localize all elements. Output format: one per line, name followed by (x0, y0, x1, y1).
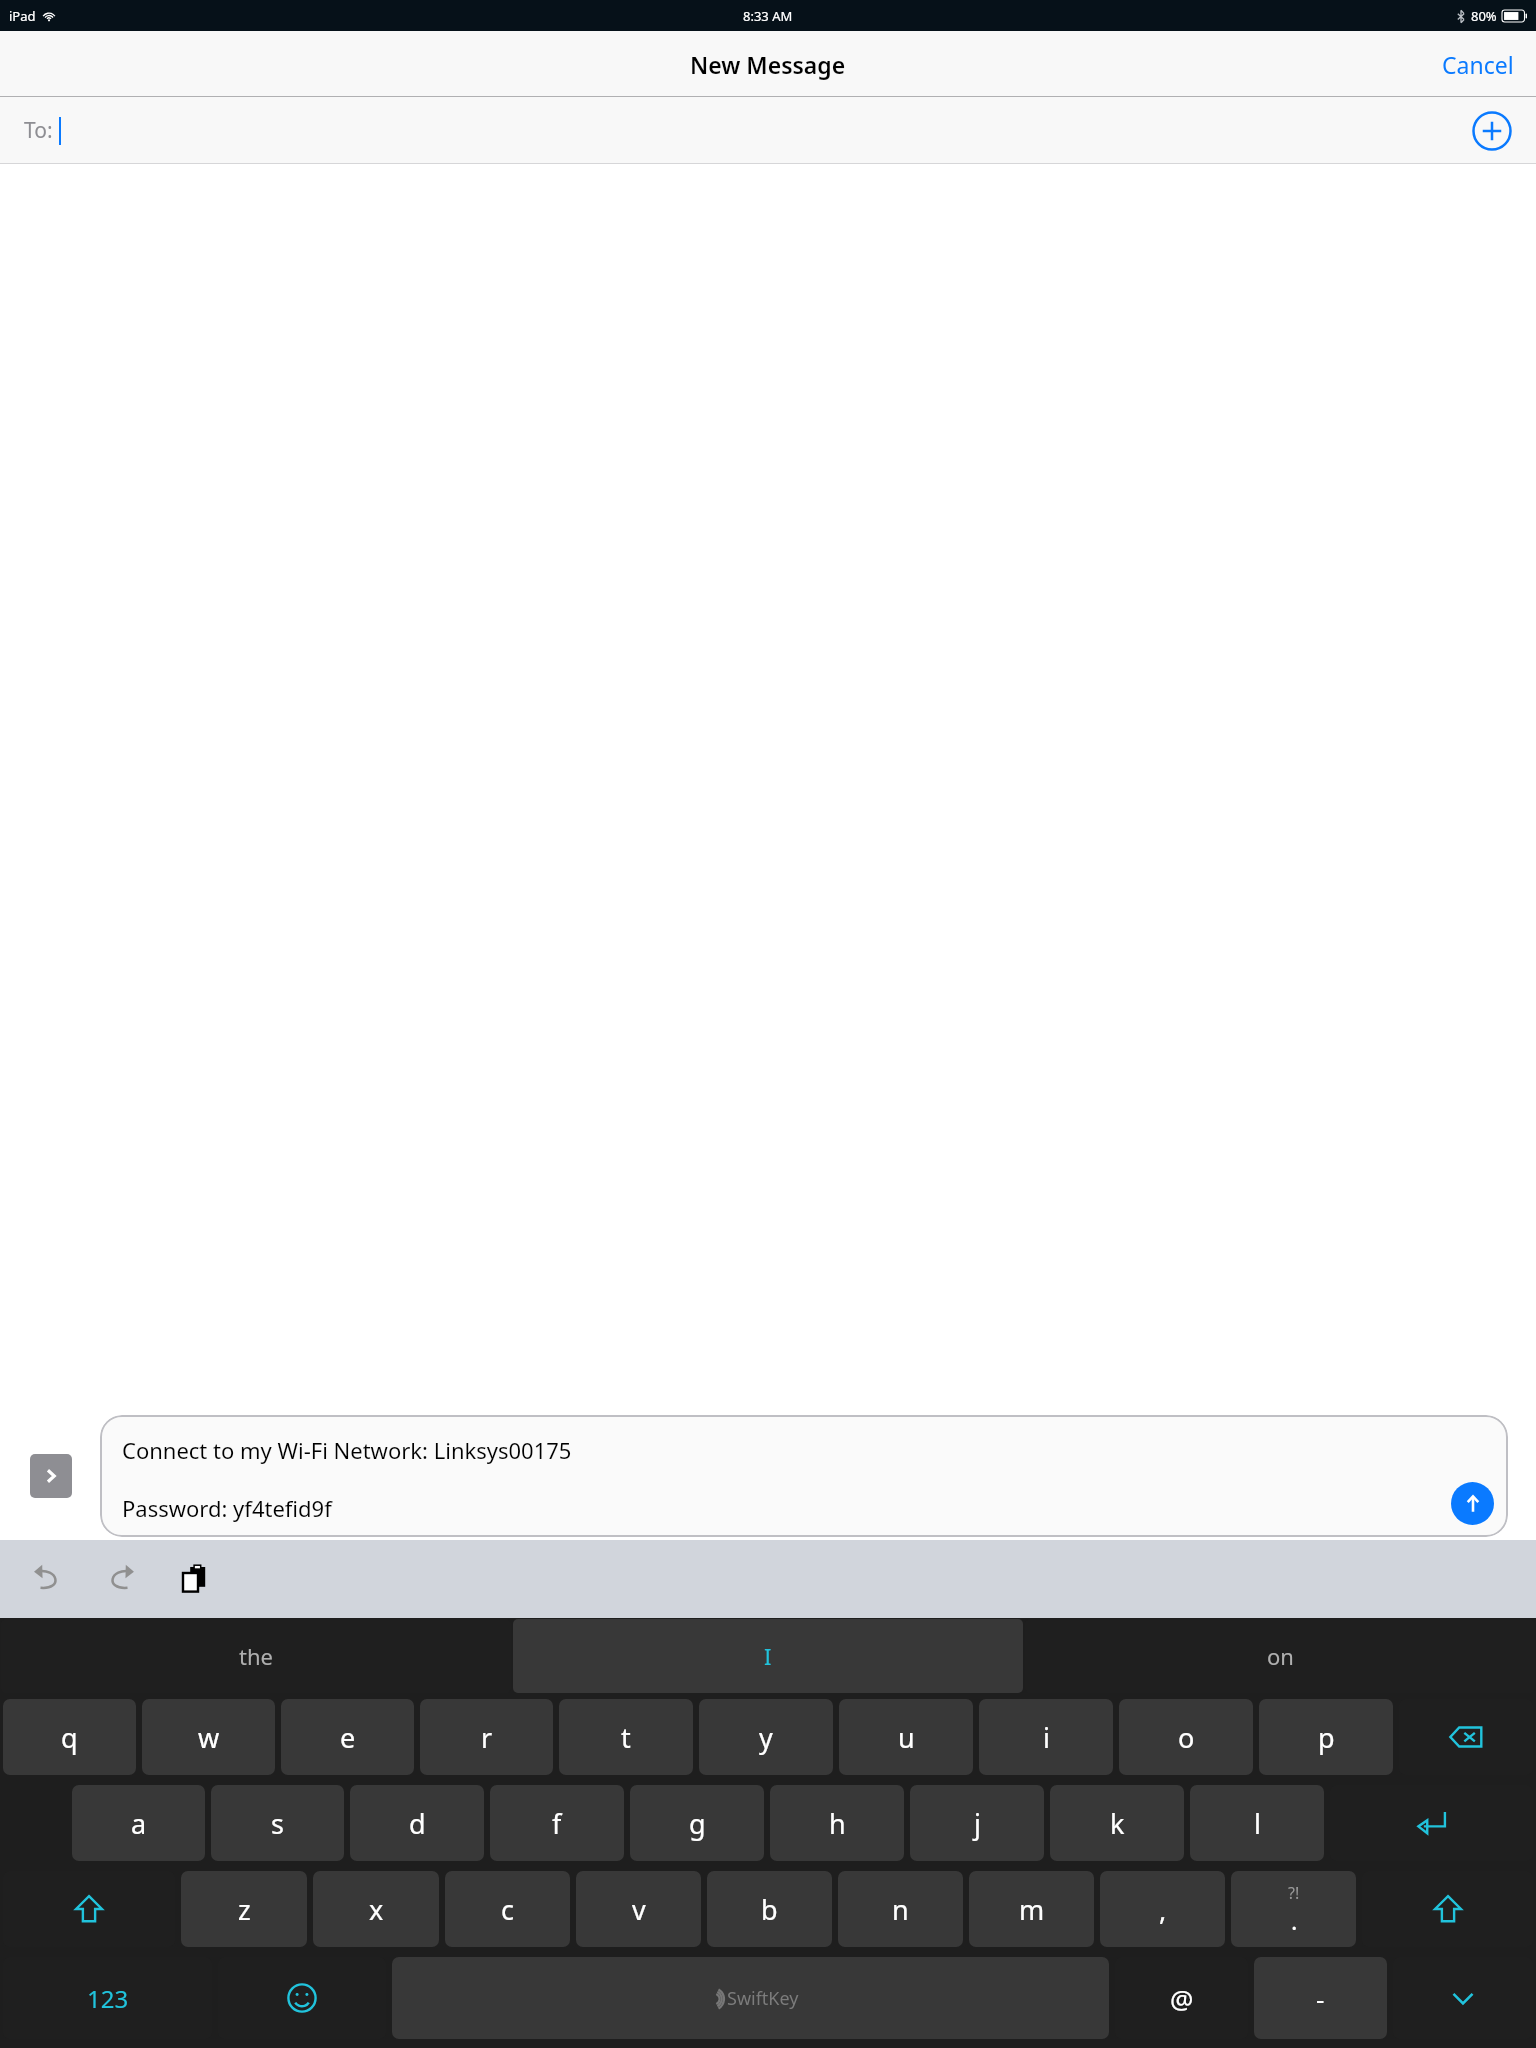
staticText: t (621, 1719, 631, 1756)
staticText: h (829, 1805, 846, 1842)
button[interactable]: Send (1451, 1482, 1494, 1525)
button[interactable]: Shift (1362, 1871, 1533, 1947)
staticText: q (61, 1719, 78, 1756)
button[interactable]: , (1100, 1871, 1225, 1947)
button[interactable]: Add contact (1472, 111, 1512, 151)
staticText: - (1316, 1981, 1325, 2016)
staticText: a (131, 1805, 147, 1842)
staticText: c (501, 1891, 514, 1928)
button[interactable]: n (838, 1871, 963, 1947)
button[interactable]: ?! (1231, 1871, 1356, 1947)
button[interactable]: Shift (3, 1871, 175, 1947)
staticText: I (764, 1641, 772, 1671)
button[interactable]: 123 (3, 1957, 212, 2039)
button[interactable]: o (1119, 1699, 1253, 1775)
staticText: @ (1170, 1981, 1194, 2016)
button[interactable]: l (1190, 1785, 1324, 1861)
button[interactable]: the (1, 1619, 511, 1693)
button[interactable]: v (576, 1871, 701, 1947)
staticText: Connect to my Wi-Fi Network: Linksys0017… (122, 1435, 572, 1465)
staticText: j (974, 1805, 981, 1842)
staticText: z (238, 1891, 251, 1928)
button[interactable]: Clipboard (166, 1550, 224, 1608)
staticText: . (1291, 1904, 1298, 1937)
staticText: 80% (1471, 7, 1497, 25)
button[interactable]: @ (1115, 1957, 1248, 2039)
staticText: Password: yf4tefid9f (122, 1493, 332, 1523)
button[interactable]: f (490, 1785, 624, 1861)
staticText: b (761, 1891, 778, 1928)
staticText: n (892, 1891, 909, 1928)
button[interactable]: t (559, 1699, 693, 1775)
staticText: iPad (9, 7, 36, 25)
button[interactable]: h (770, 1785, 904, 1861)
button[interactable]: q (3, 1699, 136, 1775)
button[interactable]: g (630, 1785, 764, 1861)
button[interactable]: c (445, 1871, 570, 1947)
button[interactable]: m (969, 1871, 1094, 1947)
staticText: i (1043, 1719, 1050, 1756)
staticText: on (1267, 1641, 1294, 1671)
button[interactable]: I (513, 1619, 1023, 1693)
staticText: r (481, 1719, 493, 1756)
button[interactable]: y (699, 1699, 833, 1775)
button[interactable]: Undo (20, 1550, 78, 1608)
button[interactable]: a (72, 1785, 205, 1861)
staticText: Cancel (1442, 49, 1514, 80)
button[interactable]: u (839, 1699, 973, 1775)
button[interactable]: x (313, 1871, 439, 1947)
button[interactable]: Expand apps (30, 1454, 72, 1498)
staticText: s (271, 1805, 284, 1842)
button[interactable]: Hide keyboard (1393, 1957, 1533, 2039)
staticText: p (1318, 1719, 1335, 1756)
button[interactable]: e (281, 1699, 414, 1775)
staticText: u (898, 1719, 915, 1756)
button[interactable]: SwiftKey (392, 1957, 1109, 2039)
button[interactable]: k (1050, 1785, 1184, 1861)
staticText: , (1159, 1891, 1167, 1928)
button[interactable]: d (350, 1785, 484, 1861)
staticText: To: (24, 116, 53, 145)
staticText: m (1019, 1891, 1045, 1928)
button[interactable]: Connect to my Wi-Fi Network: Linksys0017… (100, 1415, 1508, 1537)
staticText: y (759, 1719, 773, 1756)
button[interactable]: s (211, 1785, 344, 1861)
staticText: x (369, 1891, 384, 1928)
staticText: e (340, 1719, 356, 1756)
staticText: g (689, 1805, 706, 1842)
button[interactable]: on (1025, 1619, 1535, 1693)
button[interactable]: Emoji (218, 1957, 386, 2039)
staticText: f (552, 1805, 562, 1842)
button[interactable]: i (979, 1699, 1113, 1775)
staticText: 8:33 AM (743, 7, 793, 25)
staticText: o (1178, 1719, 1195, 1756)
staticText: New Message (690, 49, 846, 80)
button[interactable]: - (1254, 1957, 1387, 2039)
button[interactable]: p (1259, 1699, 1393, 1775)
staticText: v (632, 1891, 646, 1928)
staticText: SwiftKey (727, 1986, 799, 2011)
staticText: ?! (1288, 1882, 1300, 1904)
button[interactable]: b (707, 1871, 832, 1947)
button[interactable]: Redo (90, 1550, 148, 1608)
button[interactable]: r (420, 1699, 553, 1775)
staticText: k (1110, 1805, 1125, 1842)
staticText: the (239, 1641, 273, 1671)
button[interactable]: Cancel (1420, 37, 1536, 92)
button[interactable]: z (181, 1871, 307, 1947)
staticText: d (409, 1805, 426, 1842)
staticText: l (1254, 1805, 1261, 1842)
button[interactable]: j (910, 1785, 1044, 1861)
staticText: 123 (87, 1982, 129, 2015)
button[interactable]: Backspace (1399, 1699, 1533, 1775)
button[interactable]: Return (1330, 1785, 1533, 1861)
staticText: w (198, 1719, 220, 1756)
button[interactable]: w (142, 1699, 275, 1775)
